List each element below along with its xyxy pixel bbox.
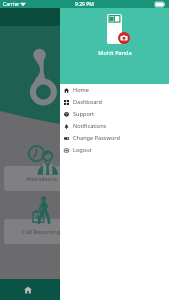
button[interactable]: Notifications [60, 120, 169, 132]
staticText: Call Reporting [22, 228, 61, 236]
button[interactable]: Change Password [60, 132, 169, 144]
button[interactable]: Home [60, 84, 169, 96]
button[interactable]: Home [0, 279, 56, 300]
button[interactable]: Call Reporting [4, 219, 79, 244]
staticText: 9:29 PM [75, 1, 94, 8]
button[interactable]: Reports [56, 279, 112, 300]
staticText: Notifications [73, 122, 107, 130]
button[interactable]: Profile photo [107, 14, 122, 44]
staticText: Change Password [73, 134, 120, 142]
staticText: Dashboard [73, 98, 102, 106]
button[interactable]: Change photo [118, 32, 130, 44]
staticText: Support [73, 110, 95, 118]
staticText: Carrier [3, 1, 20, 8]
button[interactable]: Attendance [4, 166, 79, 191]
staticText: Logout [73, 146, 92, 154]
staticText: Home [73, 86, 89, 94]
button[interactable]: Logout [60, 144, 169, 156]
staticText: Attendance [26, 175, 58, 183]
button[interactable]: Support [60, 108, 169, 120]
button[interactable]: Dashboard [60, 96, 169, 108]
staticText: Mohit Panda [98, 49, 132, 57]
